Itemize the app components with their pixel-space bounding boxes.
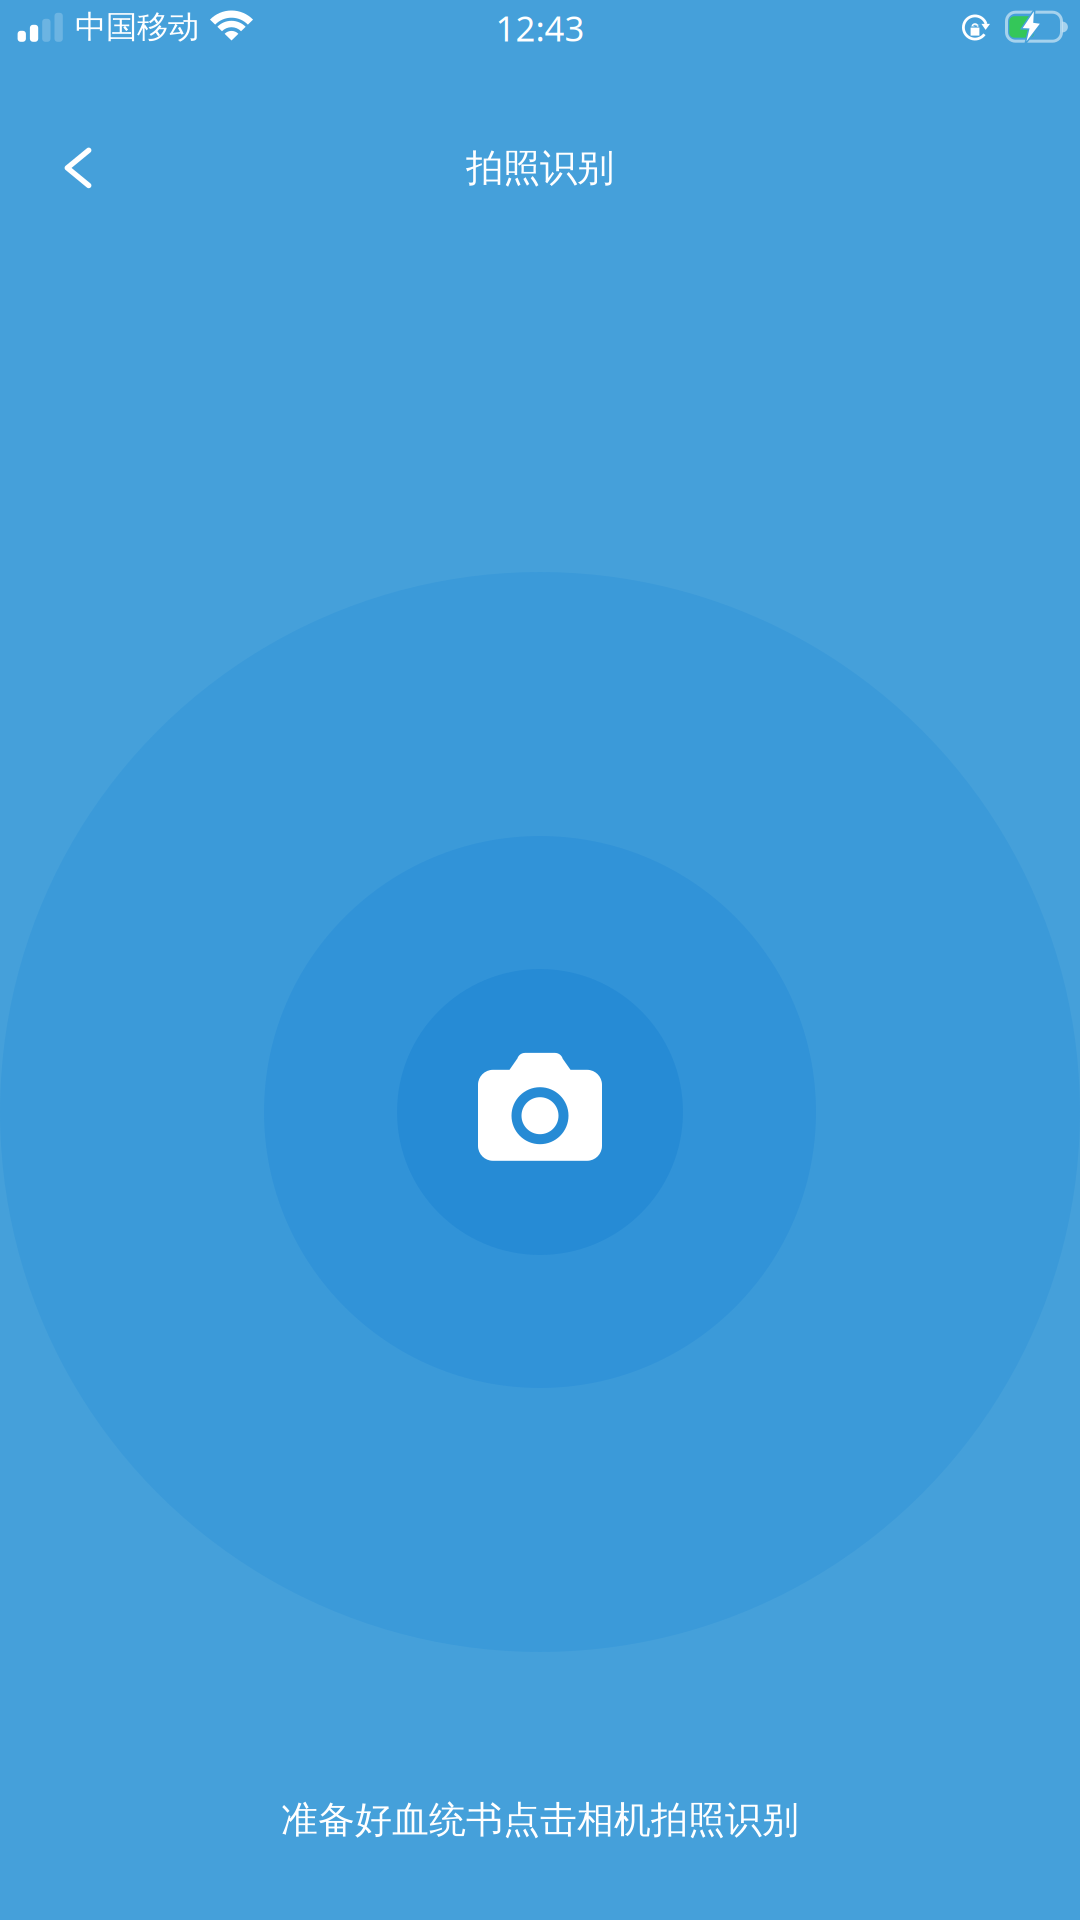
button[interactable]: 返回: [32, 122, 124, 214]
staticText: 12:43: [495, 4, 584, 52]
staticText: 拍照识别: [466, 144, 614, 191]
staticText: 准备好血统书点击相机拍照识别: [281, 1797, 799, 1843]
button[interactable]: 拍照: [397, 969, 683, 1255]
staticText: 中国移动: [75, 7, 199, 47]
